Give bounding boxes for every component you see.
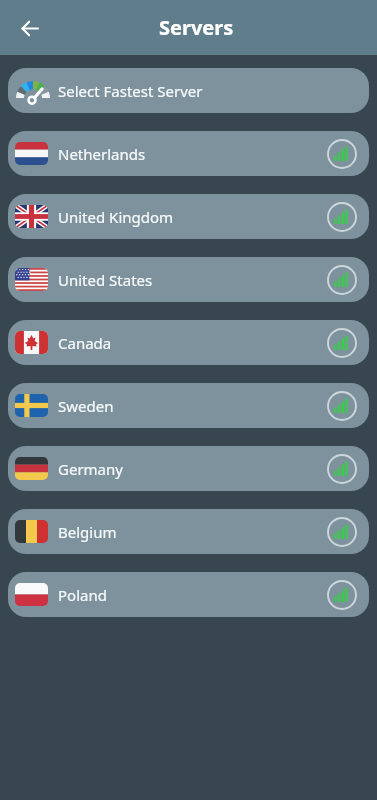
staticText: Netherlands (58, 144, 146, 164)
button[interactable]: United States (8, 257, 369, 302)
button[interactable]: Select Fastest Server (8, 68, 369, 113)
staticText: Poland (58, 585, 107, 605)
button[interactable]: Germany (8, 446, 369, 491)
button[interactable]: Sweden (8, 383, 369, 428)
button[interactable]: Netherlands (8, 131, 369, 176)
staticText: United States (58, 270, 153, 290)
staticText: Belgium (58, 522, 117, 542)
staticText: Sweden (58, 396, 114, 416)
staticText: Servers (159, 14, 234, 41)
button[interactable]: Canada (8, 320, 369, 365)
staticText: United Kingdom (58, 207, 174, 227)
button[interactable]: Poland (8, 572, 369, 617)
button[interactable]: United Kingdom (8, 194, 369, 239)
staticText: Select Fastest Server (58, 81, 203, 101)
button[interactable] (12, 10, 48, 46)
staticText: Canada (58, 333, 112, 353)
staticText: Germany (58, 459, 123, 479)
button[interactable]: Belgium (8, 509, 369, 554)
